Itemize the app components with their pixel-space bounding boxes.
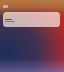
- other: App icon: [5, 14, 8, 17]
- button[interactable]: App icon: [3, 12, 60, 27]
